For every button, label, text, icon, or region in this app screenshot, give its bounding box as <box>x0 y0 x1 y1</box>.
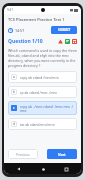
button[interactable]: b <box>8 86 77 98</box>
staticText: 14:57 <box>15 28 25 33</box>
button[interactable]: c <box>8 101 77 115</box>
staticText: b <box>13 90 15 94</box>
staticText: mnc <box>20 108 27 112</box>
staticText: tar ab cdand mnc/mnc <box>20 122 56 126</box>
staticText: TCS Placement Practice Test 1 <box>8 17 65 22</box>
staticText: Question 1/10 <box>8 38 43 45</box>
button[interactable]: Previous <box>8 149 38 159</box>
button[interactable]: Calculator <box>72 39 77 44</box>
staticText: Next <box>58 152 66 157</box>
staticText: d <box>13 122 15 126</box>
button[interactable]: a <box>8 71 77 83</box>
staticText: cp ab cdand /mnc ./mnc <box>20 90 58 94</box>
button[interactable]: SUBMIT <box>51 26 77 34</box>
button[interactable]: d <box>8 118 77 130</box>
button[interactable]: Next <box>47 149 77 159</box>
staticText: Which command is used to copy the three … <box>8 48 77 68</box>
staticText: 9:41 <box>7 8 13 12</box>
staticText: SUBMIT <box>58 28 71 32</box>
staticText: copy ab cdand /mnc/mnc <box>20 75 60 79</box>
button[interactable]: Notes <box>65 39 70 44</box>
button[interactable]: Back <box>16 166 22 172</box>
staticText: a <box>13 75 15 79</box>
button[interactable]: Recent apps <box>63 166 69 172</box>
button[interactable]: Report question <box>58 39 63 44</box>
staticText: c <box>13 106 15 110</box>
staticText: copy ab ../mnc cdand ./mnc mnc ./ <box>20 104 74 108</box>
staticText: Previous <box>16 152 30 157</box>
button[interactable]: Home <box>40 166 46 172</box>
